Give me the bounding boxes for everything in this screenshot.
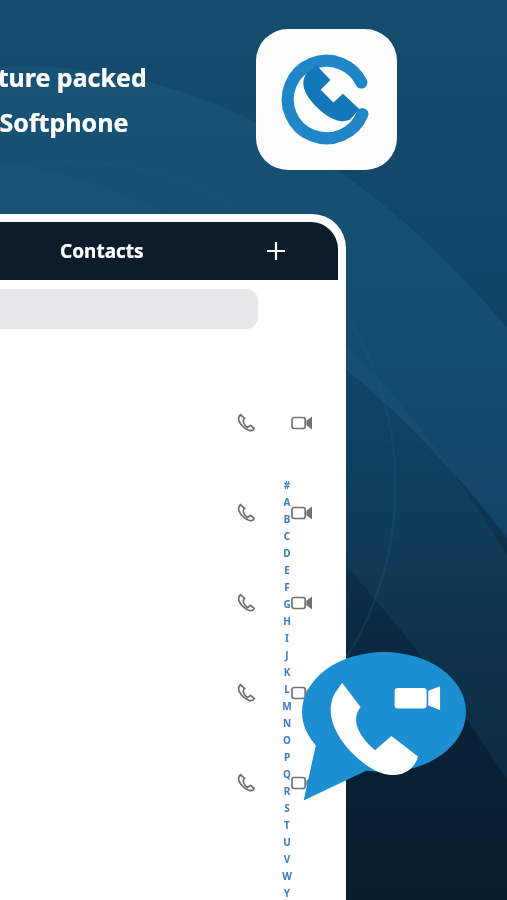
button[interactable]: Add contact — [256, 231, 296, 271]
staticText: N — [280, 716, 294, 730]
staticText: Y — [280, 886, 294, 900]
staticText: V — [280, 852, 294, 866]
staticText: Feature packed — [0, 60, 147, 94]
button[interactable]: Call — [0, 761, 338, 805]
button[interactable]: Start video call — [302, 652, 466, 802]
button[interactable]: Call — [0, 671, 338, 715]
staticText: R — [280, 784, 294, 798]
staticText: K — [280, 665, 294, 679]
staticText: SIP Softphone — [0, 105, 129, 139]
button[interactable]: Call — [0, 401, 338, 445]
button[interactable]: Call — [229, 676, 263, 710]
staticText: T — [280, 818, 294, 832]
staticText: O — [280, 733, 294, 747]
staticText: E — [280, 563, 294, 577]
button[interactable]: Contacts — [60, 238, 144, 264]
staticText: J — [280, 648, 294, 662]
staticText: W — [280, 869, 294, 883]
staticText: C — [280, 529, 294, 543]
staticText: D — [280, 546, 294, 560]
staticText: P — [280, 750, 294, 764]
button[interactable]: Video call — [285, 586, 319, 620]
staticText: L — [280, 682, 294, 696]
button[interactable]: Video call — [285, 496, 319, 530]
button[interactable]: App icon — [256, 29, 397, 170]
staticText: S — [280, 801, 294, 815]
staticText: A — [280, 495, 294, 509]
staticText: F — [280, 580, 294, 594]
staticText: H — [280, 614, 294, 628]
button[interactable]: Video call — [285, 676, 319, 710]
button[interactable]: Call — [0, 581, 338, 625]
button[interactable]: Alphabet index — [280, 478, 294, 900]
button[interactable]: s — [0, 491, 338, 535]
button[interactable]: Video call — [285, 406, 319, 440]
button[interactable]: Call — [229, 586, 263, 620]
staticText: G — [280, 597, 294, 611]
button[interactable]: Call — [229, 406, 263, 440]
button[interactable]: Video call — [285, 766, 319, 800]
staticText: U — [280, 835, 294, 849]
staticText: M — [280, 699, 294, 713]
button[interactable]: Call — [229, 496, 263, 530]
staticText: Q — [280, 767, 294, 781]
button[interactable]: Call — [229, 766, 263, 800]
staticText: B — [280, 512, 294, 526]
staticText: I — [280, 631, 294, 645]
staticText: # — [280, 478, 294, 492]
